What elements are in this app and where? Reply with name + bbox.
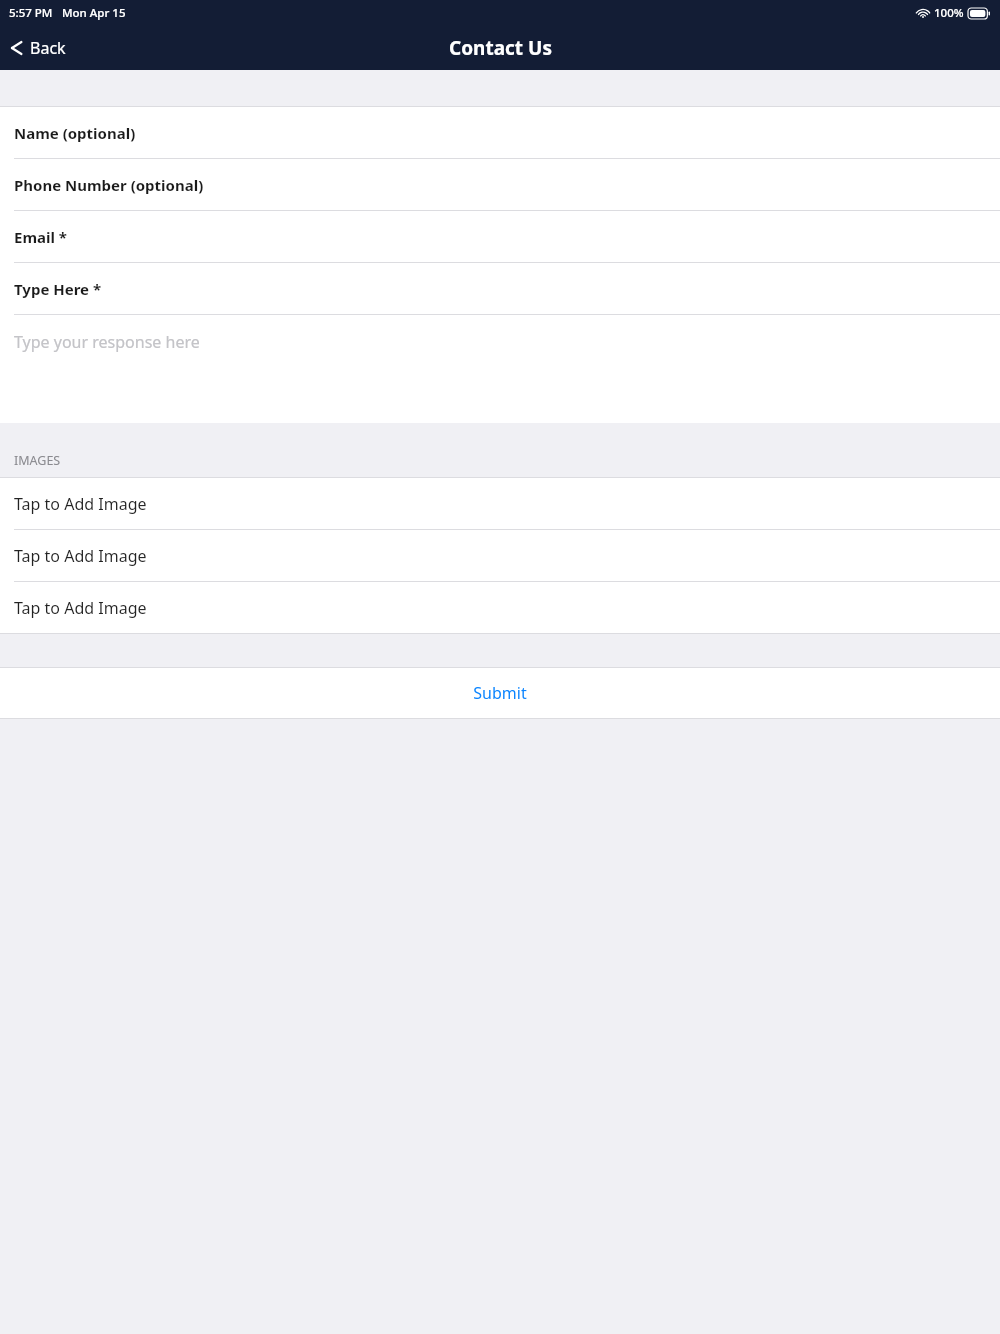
button[interactable]: Tap to Add Image bbox=[0, 530, 1000, 581]
button[interactable]: Submit bbox=[0, 668, 1000, 718]
staticText: Tap to Add Image bbox=[14, 493, 147, 515]
staticText: Type your response here bbox=[14, 331, 200, 353]
staticText: Phone Number (optional) bbox=[14, 175, 204, 195]
staticText: Contact Us bbox=[449, 35, 552, 61]
button[interactable]: Email * bbox=[0, 211, 1000, 262]
staticText: Mon Apr 15 bbox=[62, 5, 126, 21]
button[interactable]: Type Here * bbox=[0, 263, 1000, 314]
staticText: Type Here * bbox=[14, 279, 102, 299]
staticText: 5:57 PM bbox=[9, 5, 53, 21]
staticText: 100% bbox=[934, 5, 964, 21]
button[interactable]: Tap to Add Image bbox=[0, 582, 1000, 633]
button[interactable]: Phone Number (optional) bbox=[0, 159, 1000, 210]
button[interactable]: Back bbox=[0, 26, 80, 70]
button[interactable]: Name (optional) bbox=[0, 107, 1000, 158]
staticText: Submit bbox=[473, 682, 527, 704]
staticText: Name (optional) bbox=[14, 123, 136, 143]
staticText: Email * bbox=[14, 227, 67, 247]
staticText: IMAGES bbox=[14, 452, 61, 469]
button[interactable]: Type your response here bbox=[0, 315, 1000, 423]
staticText: Tap to Add Image bbox=[14, 597, 147, 619]
staticText: Tap to Add Image bbox=[14, 545, 147, 567]
button[interactable]: Tap to Add Image bbox=[0, 478, 1000, 529]
staticText: Back bbox=[30, 37, 66, 59]
